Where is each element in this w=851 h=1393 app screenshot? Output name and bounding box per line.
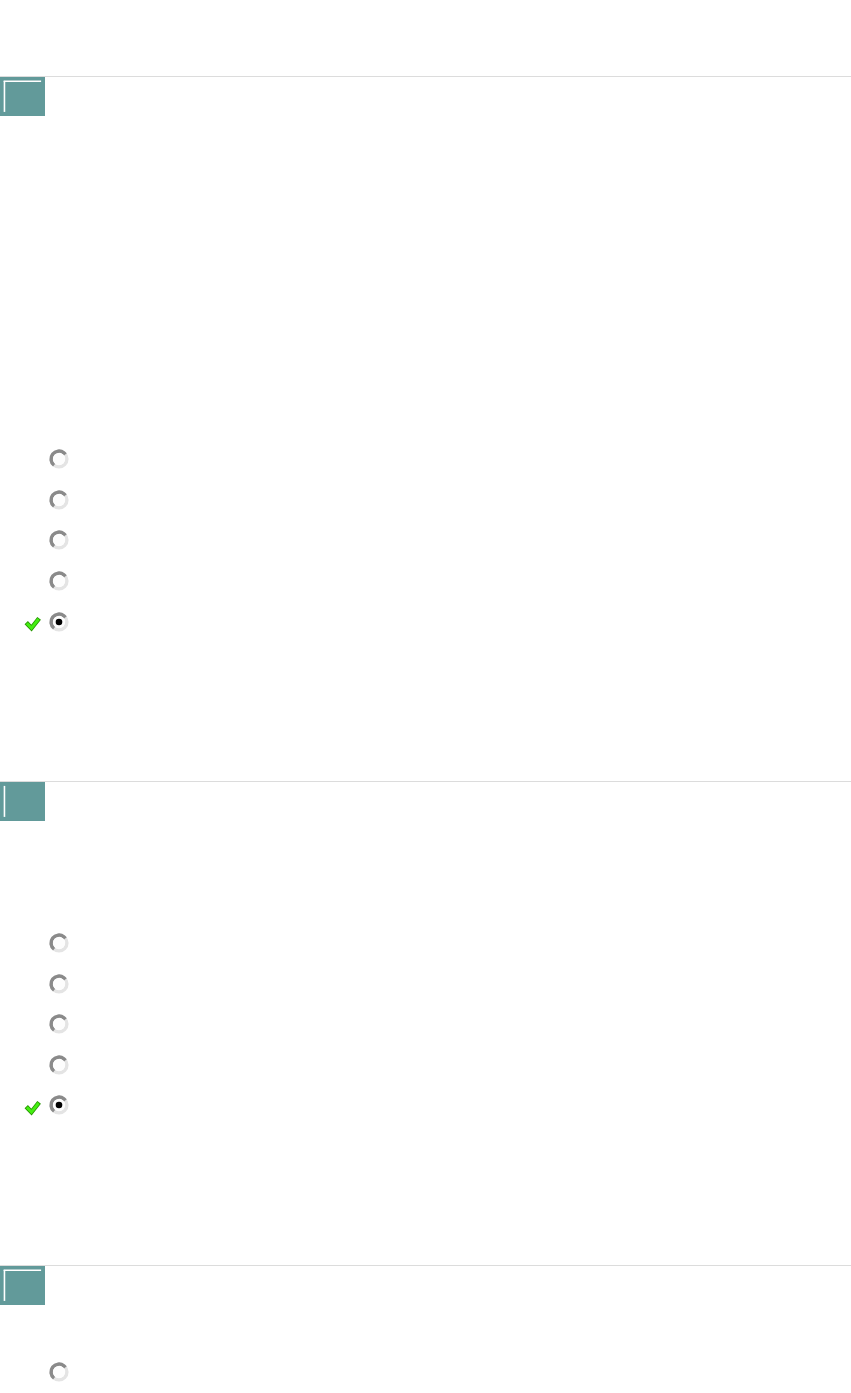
button[interactable]: Question 2 — [0, 782, 45, 821]
other: Correct answer — [26, 618, 39, 630]
button[interactable]: Selected answer option — [49, 612, 69, 632]
button[interactable]: Answer option — [49, 1055, 69, 1075]
button[interactable]: Answer option — [49, 1362, 69, 1382]
button[interactable]: Answer option — [49, 571, 69, 591]
button[interactable]: Question 3 — [0, 1266, 45, 1305]
button[interactable]: Answer option — [49, 530, 69, 550]
button[interactable]: Answer option — [49, 1014, 69, 1034]
button[interactable]: Answer option — [49, 974, 69, 994]
button[interactable]: Answer option — [49, 933, 69, 953]
button[interactable]: Selected answer option — [49, 1095, 69, 1115]
other: Correct answer — [26, 1102, 39, 1114]
button[interactable]: Answer option — [49, 449, 69, 469]
button[interactable]: Question 1 — [0, 77, 45, 116]
button[interactable]: Answer option — [49, 490, 69, 510]
